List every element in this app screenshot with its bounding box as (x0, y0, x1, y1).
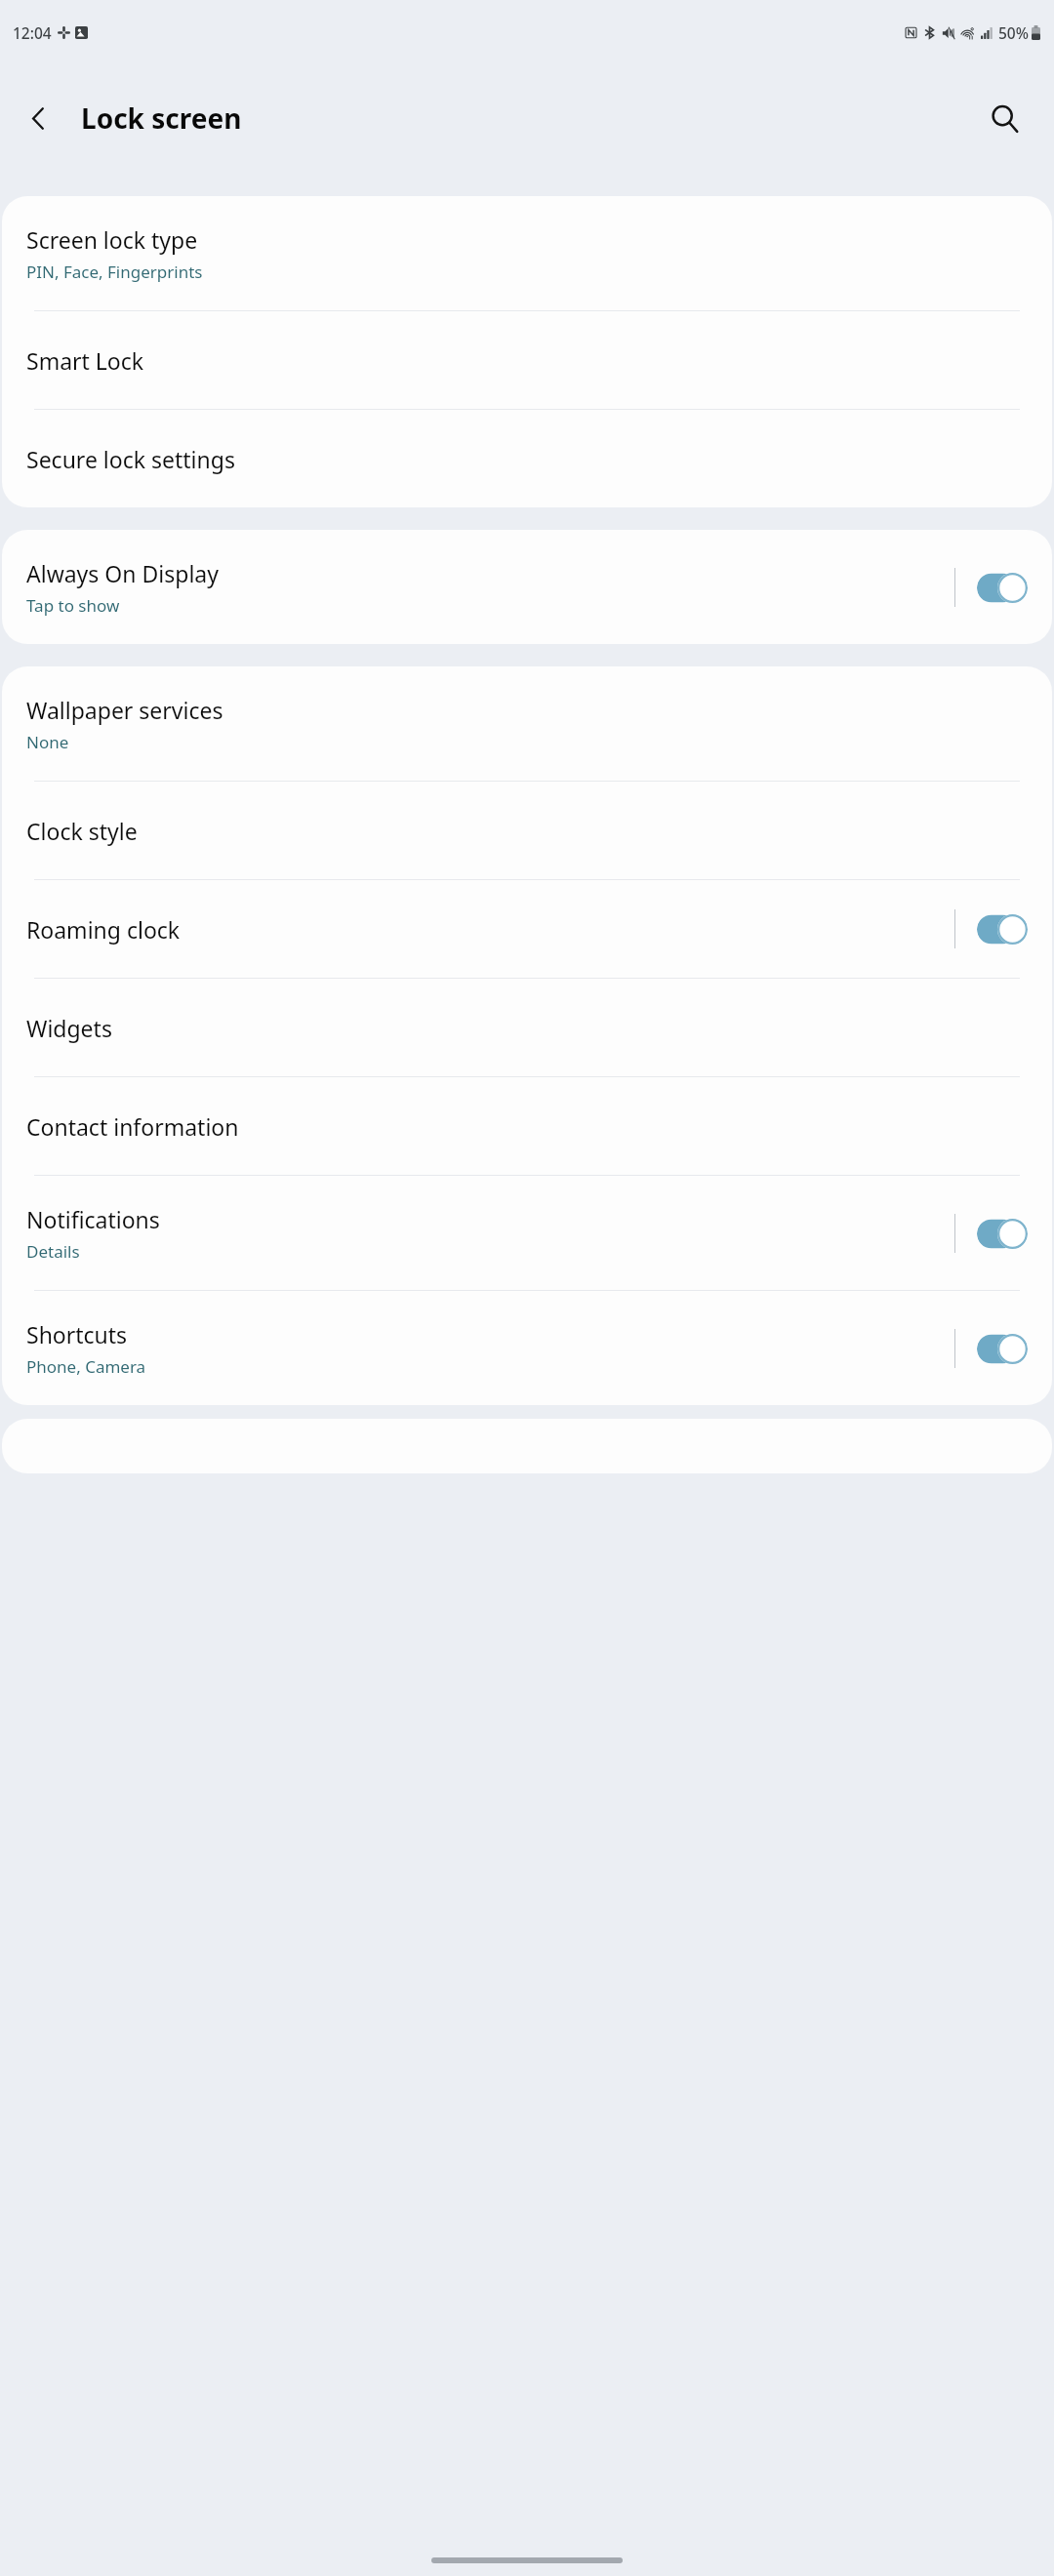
staticText: Clock style (26, 816, 138, 846)
staticText: 12:04 (13, 22, 52, 43)
staticText: Always On Display (26, 558, 219, 588)
button[interactable]: Toggle (977, 572, 1028, 604)
staticText: Details (26, 1240, 80, 1263)
button[interactable]: Widgets (2, 979, 1052, 1076)
button[interactable]: Roaming clock (2, 880, 1052, 978)
staticText: Roaming clock (26, 914, 181, 945)
staticText: Notifications (26, 1204, 160, 1234)
staticText: Screen lock type (26, 224, 198, 255)
staticText: Contact information (26, 1111, 239, 1142)
button[interactable]: Secure lock settings (2, 410, 1052, 507)
staticText: 50% (998, 22, 1029, 43)
staticText: Secure lock settings (26, 444, 235, 474)
staticText: Phone, Camera (26, 1355, 146, 1378)
staticText: Shortcuts (26, 1319, 128, 1349)
staticText: Tap to show (26, 594, 120, 617)
button[interactable]: Clock style (2, 782, 1052, 879)
staticText: PIN, Face, Fingerprints (26, 261, 203, 283)
button[interactable]: Contact information (2, 1077, 1052, 1175)
staticText: None (26, 731, 69, 753)
button[interactable]: Wallpaper services (2, 666, 1052, 781)
button[interactable]: Smart Lock (2, 311, 1052, 409)
staticText: Smart Lock (26, 345, 144, 376)
staticText: Wallpaper services (26, 695, 223, 725)
button[interactable]: Search (974, 88, 1034, 148)
button[interactable]: Always On Display (2, 530, 1052, 644)
staticText: Lock screen (81, 100, 242, 137)
button[interactable]: Screen lock type (2, 196, 1052, 310)
button[interactable]: Back (8, 88, 68, 148)
button[interactable]: Toggle (977, 1333, 1028, 1365)
button[interactable]: Toggle (977, 1218, 1028, 1250)
button[interactable]: Notifications (2, 1176, 1052, 1290)
staticText: Widgets (26, 1013, 112, 1043)
button[interactable]: Toggle (977, 913, 1028, 946)
button[interactable]: Shortcuts (2, 1291, 1052, 1405)
